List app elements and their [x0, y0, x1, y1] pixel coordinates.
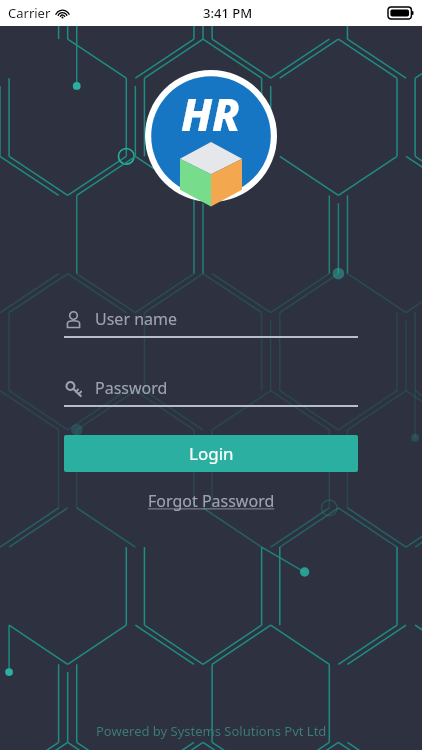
staticText: HR	[181, 84, 241, 144]
staticText: Login	[189, 442, 234, 465]
staticText: Carrier	[8, 4, 51, 22]
button[interactable]: User name	[64, 302, 358, 336]
staticText: Password	[95, 377, 168, 399]
button[interactable]: Login	[64, 435, 358, 472]
button[interactable]: Forgot Password	[140, 486, 283, 516]
staticText: Forgot Password	[148, 490, 275, 512]
staticText: Powered by Systems Solutions Pvt Ltd	[96, 722, 327, 740]
button[interactable]: Password	[64, 371, 358, 405]
staticText: User name	[95, 308, 178, 330]
staticText: 3:41 PM	[203, 4, 253, 22]
